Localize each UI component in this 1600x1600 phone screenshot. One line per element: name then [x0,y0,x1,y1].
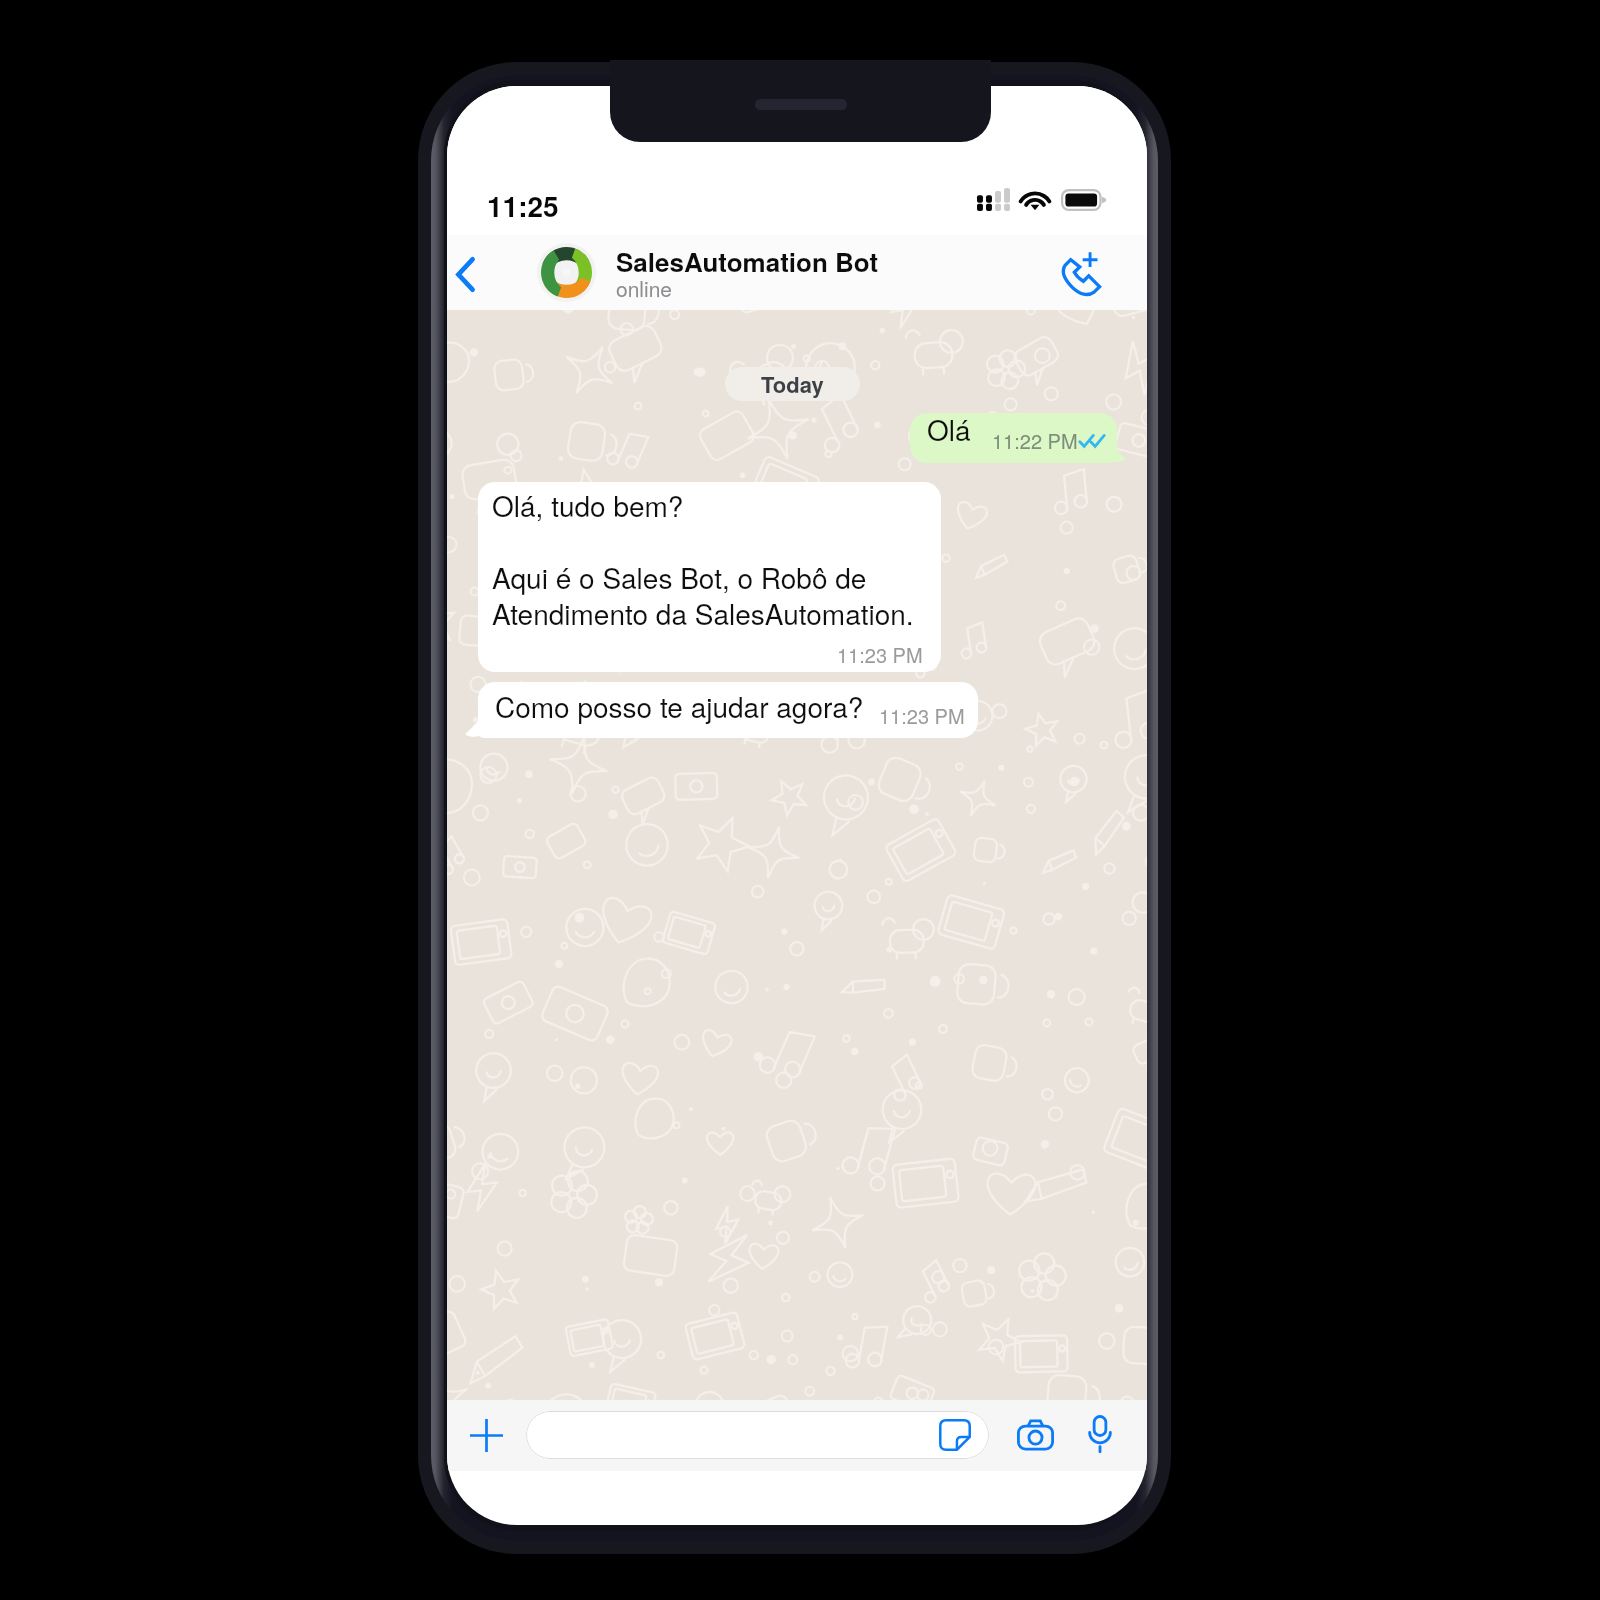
button[interactable]: Camera [1010,1410,1060,1460]
staticText: 11:23 PM [879,701,965,730]
button[interactable]: Como posso te ajudar agora? [478,682,978,738]
button[interactable]: SalesAutomation Bot [447,235,1007,310]
staticText: online [616,273,673,303]
button[interactable]: Stickers [932,1412,978,1458]
staticText: SalesAutomation Bot [616,243,879,280]
staticText: 11:25 [487,185,559,225]
button[interactable]: Back [447,248,491,300]
button[interactable]: Olá, tudo bem? Aqui é o Sales Bot, o Rob… [478,482,941,672]
button[interactable]: Attach [462,1411,511,1460]
staticText: 11:23 PM [837,640,923,669]
button[interactable]: Voice message [1074,1408,1126,1460]
staticText: 11:22 PM [992,426,1078,455]
button[interactable]: Olá [910,413,1117,463]
staticText: Today [761,368,824,400]
button[interactable]: Today [725,367,860,401]
button[interactable]: Add call [1049,242,1109,302]
staticText: Olá [927,413,971,449]
staticText: Como posso te ajudar agora? [495,686,864,726]
staticText: Olá, tudo bem? Aqui é o Sales Bot, o Rob… [492,485,914,633]
button[interactable]: Message input field [526,1411,989,1459]
